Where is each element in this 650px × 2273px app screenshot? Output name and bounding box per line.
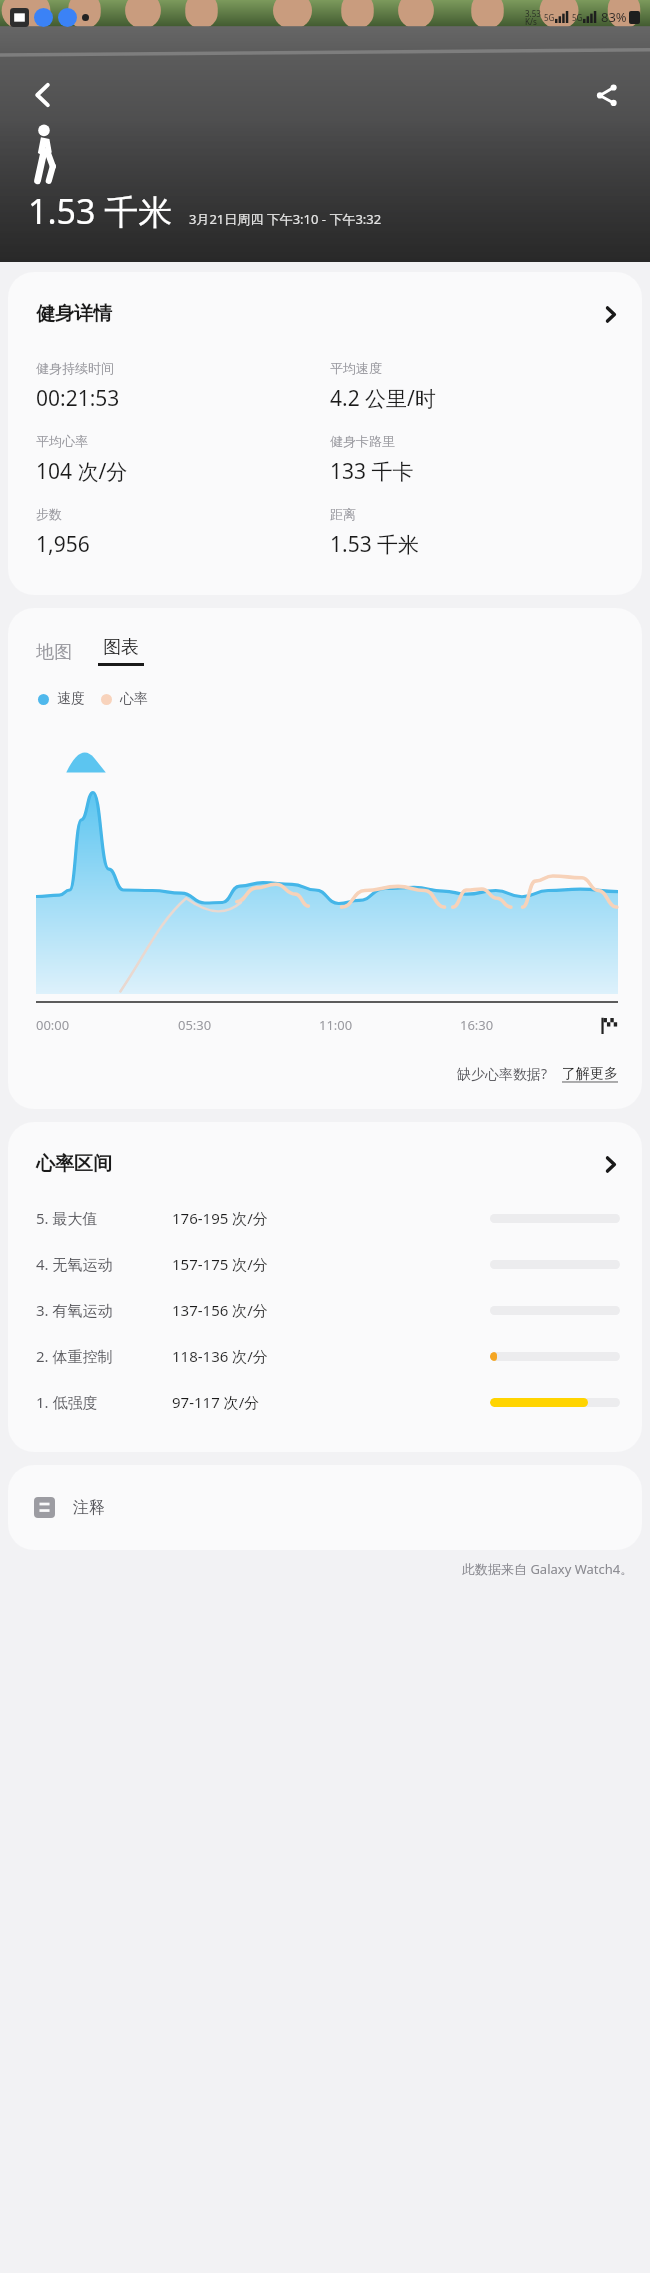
staticText: 速度 bbox=[57, 690, 85, 708]
staticText: 5G bbox=[572, 12, 583, 23]
staticText: 心率区间 bbox=[36, 1152, 112, 1176]
staticText: 健身卡路里 bbox=[330, 433, 395, 449]
button[interactable]: 5. 最大值 bbox=[8, 1182, 642, 1228]
button[interactable]: 3. 有氧运动 bbox=[8, 1274, 642, 1320]
button[interactable]: 图表 bbox=[98, 636, 144, 666]
staticText: 健身持续时间 bbox=[36, 360, 114, 376]
staticText: 05:30 bbox=[178, 1016, 212, 1034]
staticText: 5G bbox=[544, 12, 555, 23]
staticText: 图表 bbox=[103, 636, 139, 659]
staticText: 133 千卡 bbox=[330, 457, 414, 486]
staticText: 平均速度 bbox=[330, 360, 382, 376]
staticText: 缺少心率数据? bbox=[457, 1064, 548, 1083]
staticText: 11:00 bbox=[319, 1016, 353, 1034]
staticText: 1.53 千米 bbox=[330, 530, 420, 559]
staticText: 16:30 bbox=[460, 1016, 494, 1034]
button[interactable]: Share bbox=[584, 72, 630, 118]
staticText: 距离 bbox=[330, 506, 356, 522]
staticText: 104 次/分 bbox=[36, 457, 128, 486]
staticText: 1,956 bbox=[36, 530, 90, 559]
staticText: 此数据来自 Galaxy Watch4。 bbox=[462, 1560, 634, 1578]
staticText: 3月21日周四 下午3:10 - 下午3:32 bbox=[189, 210, 382, 228]
staticText: 1.53 千米 bbox=[28, 188, 173, 234]
staticText: 了解更多 bbox=[562, 1065, 618, 1083]
staticText: 00:00 bbox=[36, 1016, 70, 1034]
staticText: 注释 bbox=[73, 1498, 105, 1518]
staticText: 1. 低强度 bbox=[36, 1392, 172, 1412]
button[interactable]: 4. 无氧运动 bbox=[8, 1228, 642, 1274]
staticText: 5. 最大值 bbox=[36, 1208, 172, 1228]
button[interactable]: 了解更多 bbox=[562, 1065, 618, 1083]
button[interactable]: 1. 低强度 bbox=[8, 1366, 642, 1412]
staticText: 地图 bbox=[36, 641, 72, 664]
staticText: 97-117 次/分 bbox=[172, 1392, 322, 1412]
staticText: 步数 bbox=[36, 506, 62, 522]
button[interactable]: Back bbox=[20, 72, 66, 118]
button[interactable]: 注释 bbox=[8, 1465, 642, 1550]
staticText: 157-175 次/分 bbox=[172, 1254, 322, 1274]
button[interactable]: 地图 bbox=[36, 639, 72, 666]
button[interactable]: 健身详情 bbox=[8, 272, 642, 340]
staticText: 83% bbox=[601, 8, 627, 26]
staticText: 2. 体重控制 bbox=[36, 1346, 172, 1366]
staticText: 4.2 公里/时 bbox=[330, 384, 436, 413]
staticText: 00:21:53 bbox=[36, 384, 120, 413]
staticText: 137-156 次/分 bbox=[172, 1300, 322, 1320]
staticText: 心率 bbox=[120, 690, 148, 708]
button[interactable]: 心率区间 bbox=[8, 1122, 642, 1182]
staticText: 4. 无氧运动 bbox=[36, 1254, 172, 1274]
button[interactable]: 2. 体重控制 bbox=[8, 1320, 642, 1366]
staticText: 3. 有氧运动 bbox=[36, 1300, 172, 1320]
staticText: 平均心率 bbox=[36, 433, 88, 449]
staticText: 健身详情 bbox=[36, 302, 112, 326]
staticText: 176-195 次/分 bbox=[172, 1208, 322, 1228]
staticText: 118-136 次/分 bbox=[172, 1346, 322, 1366]
staticText: 3.53 K/s bbox=[525, 8, 541, 27]
